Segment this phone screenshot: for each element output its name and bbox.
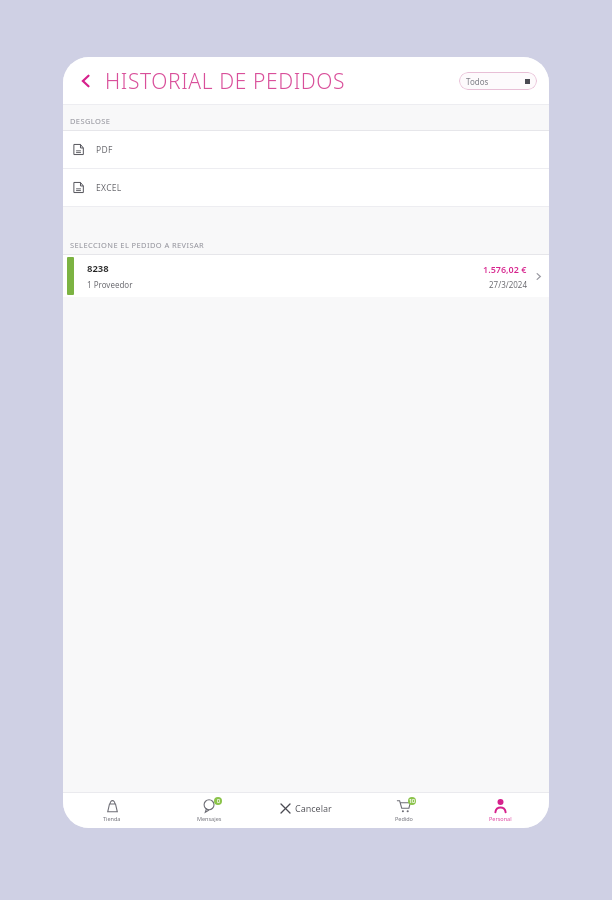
- staticText: PDF: [96, 144, 113, 156]
- button[interactable]: Cancelar: [270, 797, 343, 819]
- staticText: DESGLOSE: [70, 116, 111, 126]
- button[interactable]: 0: [161, 792, 258, 828]
- button[interactable]: 10: [355, 792, 452, 828]
- staticText: SELECCIONE EL PEDIDO A REVISAR: [70, 240, 205, 250]
- staticText: HISTORIAL DE PEDIDOS: [105, 67, 346, 96]
- staticText: Todos: [466, 76, 489, 87]
- staticText: Tienda: [103, 815, 121, 822]
- staticText: Personal: [489, 815, 512, 822]
- button[interactable]: PDF: [63, 131, 549, 168]
- staticText: 10: [409, 798, 415, 805]
- button[interactable]: Back: [71, 66, 101, 96]
- staticText: 1.576,02 €: [483, 263, 527, 275]
- staticText: 1 Proveedor: [87, 279, 133, 290]
- button[interactable]: 8238: [63, 255, 549, 297]
- staticText: 27/3/2024: [489, 279, 527, 290]
- staticText: Pedido: [395, 815, 413, 822]
- staticText: 0: [217, 798, 220, 805]
- staticText: Cancelar: [295, 802, 332, 814]
- staticText: Mensajes: [197, 815, 222, 822]
- staticText: 8238: [87, 262, 109, 275]
- staticText: EXCEL: [96, 182, 122, 194]
- button[interactable]: Todos: [459, 72, 537, 90]
- button[interactable]: EXCEL: [63, 169, 549, 206]
- button[interactable]: Tienda: [63, 792, 161, 828]
- button[interactable]: Personal: [452, 792, 549, 828]
